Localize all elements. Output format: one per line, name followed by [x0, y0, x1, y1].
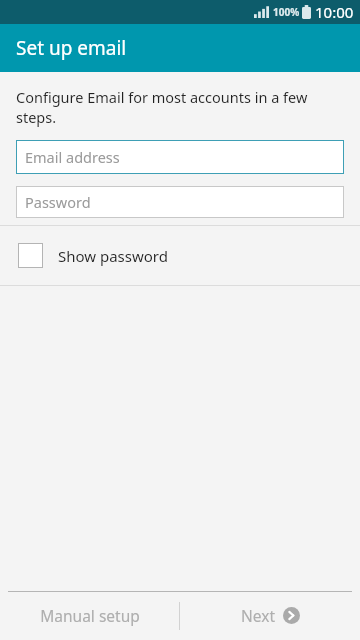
staticText: Show password — [58, 246, 168, 266]
other: Next — [283, 607, 300, 624]
button[interactable]: Show password — [0, 226, 360, 285]
staticText: 100% — [273, 5, 300, 19]
staticText: Next — [241, 605, 276, 626]
staticText: Email address — [25, 147, 120, 167]
button[interactable]: Next — [180, 592, 360, 639]
button[interactable]: Manual setup — [0, 592, 179, 639]
button[interactable]: Password — [16, 186, 344, 218]
staticText: Set up email — [16, 35, 127, 61]
button[interactable]: Email address — [16, 140, 344, 174]
staticText: Password — [25, 192, 91, 212]
staticText: Manual setup — [40, 605, 140, 626]
staticText: Configure Email for most accounts in a f… — [16, 87, 342, 127]
staticText: 10:00 — [315, 2, 354, 22]
